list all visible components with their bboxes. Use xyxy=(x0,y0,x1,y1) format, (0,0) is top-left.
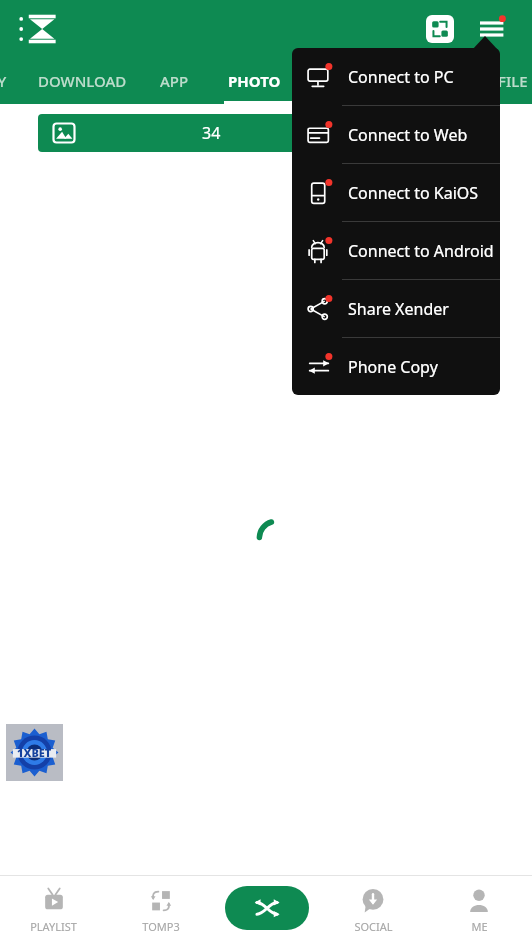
button[interactable] xyxy=(394,114,494,152)
staticText: RY xyxy=(0,71,7,91)
button[interactable]: Xender xyxy=(12,3,64,55)
staticText: Connect to Android xyxy=(348,240,494,262)
button[interactable]: FILE xyxy=(498,58,528,104)
staticText: Share Xender xyxy=(348,298,449,320)
button[interactable]: Phone Copy xyxy=(292,338,500,395)
staticText: Connect to KaiOS xyxy=(348,182,479,204)
staticText: SOCIAL xyxy=(354,919,393,934)
button[interactable]: Transfer xyxy=(420,9,460,49)
staticText: Connect to PC xyxy=(348,66,454,88)
button[interactable]: Menu xyxy=(470,7,514,51)
staticText: FILE xyxy=(498,71,528,91)
button[interactable]: 34 xyxy=(38,114,386,152)
button[interactable]: Connect to Android xyxy=(292,222,500,279)
button[interactable]: PHOTO xyxy=(228,58,281,104)
button[interactable]: APP xyxy=(160,58,189,104)
staticText: APP xyxy=(160,71,189,91)
button[interactable]: RY xyxy=(0,58,7,104)
staticText: TOMP3 xyxy=(142,919,180,934)
button[interactable]: ME xyxy=(426,875,532,946)
staticText: DOWNLOAD xyxy=(38,71,127,91)
button[interactable]: PLAYLIST xyxy=(0,875,107,946)
button[interactable]: Transfer files xyxy=(225,886,309,930)
staticText: 1XBET xyxy=(17,745,52,760)
button[interactable]: Share Xender xyxy=(292,280,500,337)
staticText: ME xyxy=(471,919,488,934)
staticText: 34 xyxy=(202,122,221,144)
button[interactable]: DOWNLOAD xyxy=(38,58,127,104)
staticText: PLAYLIST xyxy=(30,919,77,934)
button[interactable]: TOMP3 xyxy=(107,875,214,946)
button[interactable]: SOCIAL xyxy=(320,875,426,946)
staticText: Connect to Web xyxy=(348,124,468,146)
staticText: PHOTO xyxy=(228,71,281,91)
button[interactable]: Connect to KaiOS xyxy=(292,164,500,221)
button[interactable]: Connect to Web xyxy=(292,106,500,163)
button[interactable]: 1XBET xyxy=(6,724,63,781)
button[interactable]: Connect to PC xyxy=(292,48,500,105)
staticText: Phone Copy xyxy=(348,356,438,378)
